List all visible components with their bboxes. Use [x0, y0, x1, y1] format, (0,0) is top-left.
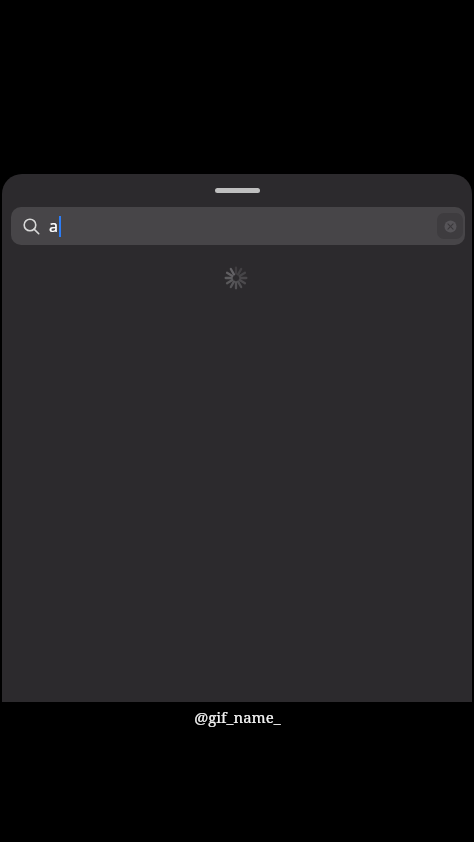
staticText: a [49, 215, 58, 237]
button[interactable] [215, 188, 260, 193]
button[interactable]: a [11, 207, 465, 245]
staticText: @gif_name_ [194, 707, 281, 727]
button[interactable]: @gif_name_ [0, 707, 474, 727]
button[interactable]: Clear search [437, 213, 463, 239]
